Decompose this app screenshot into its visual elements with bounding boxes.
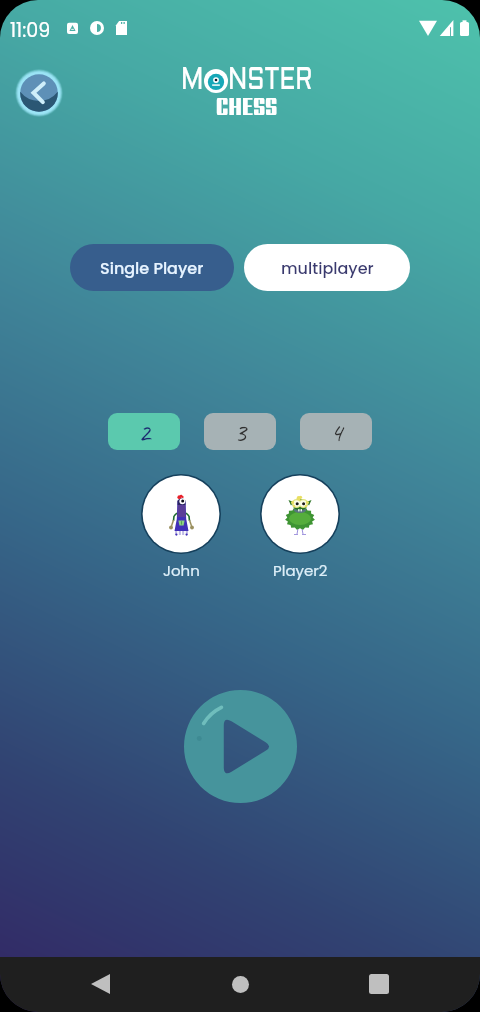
staticText: CHESS — [216, 86, 278, 122]
button[interactable]: Back — [15, 69, 63, 117]
button[interactable]: 4 — [300, 413, 372, 450]
button[interactable]: Play — [184, 690, 297, 803]
staticText: 3 — [234, 415, 247, 449]
button[interactable]: Player2 — [260, 474, 340, 581]
staticText: multiplayer — [281, 257, 374, 279]
staticText: 11:09 — [10, 17, 51, 44]
staticText: Player2 — [273, 560, 328, 581]
button[interactable]: 2 — [108, 413, 180, 450]
button[interactable]: Single Player — [70, 244, 234, 291]
staticText: 4 — [330, 415, 343, 449]
button[interactable]: Recent apps — [355, 960, 403, 1008]
button[interactable]: 3 — [204, 413, 276, 450]
staticText: 2 — [138, 415, 151, 449]
staticText: M — [181, 67, 204, 95]
staticText: Single Player — [100, 257, 204, 279]
staticText: John — [163, 560, 200, 581]
button[interactable]: John — [141, 474, 221, 581]
button[interactable]: multiplayer — [244, 244, 410, 291]
button[interactable]: Home — [216, 960, 264, 1008]
button[interactable]: Back — [76, 960, 124, 1008]
staticText: NSTER — [228, 67, 313, 95]
